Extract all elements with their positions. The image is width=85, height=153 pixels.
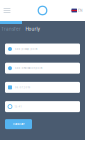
button[interactable]: 08.07.2019	[5, 82, 80, 93]
button[interactable]: Transfer	[0, 24, 22, 34]
staticText: Calculate	[13, 123, 24, 126]
button[interactable]: Add pickup point	[5, 43, 80, 54]
staticText: Add destination point	[14, 67, 42, 70]
staticText: EN	[78, 9, 82, 12]
button[interactable]: Add destination point	[5, 63, 80, 74]
staticText: 13:41	[14, 105, 21, 108]
staticText: 08.07.2019	[14, 86, 30, 89]
button[interactable]: 13:41	[5, 101, 80, 112]
staticText: Add pickup point	[14, 47, 37, 51]
button[interactable]: Menu	[0, 0, 14, 21]
button[interactable]: Language	[68, 0, 85, 21]
button[interactable]: Calculate	[5, 119, 32, 129]
staticText: Transfer	[1, 26, 21, 32]
button[interactable]: Hourly	[22, 24, 44, 34]
staticText: Hourly	[25, 26, 40, 32]
